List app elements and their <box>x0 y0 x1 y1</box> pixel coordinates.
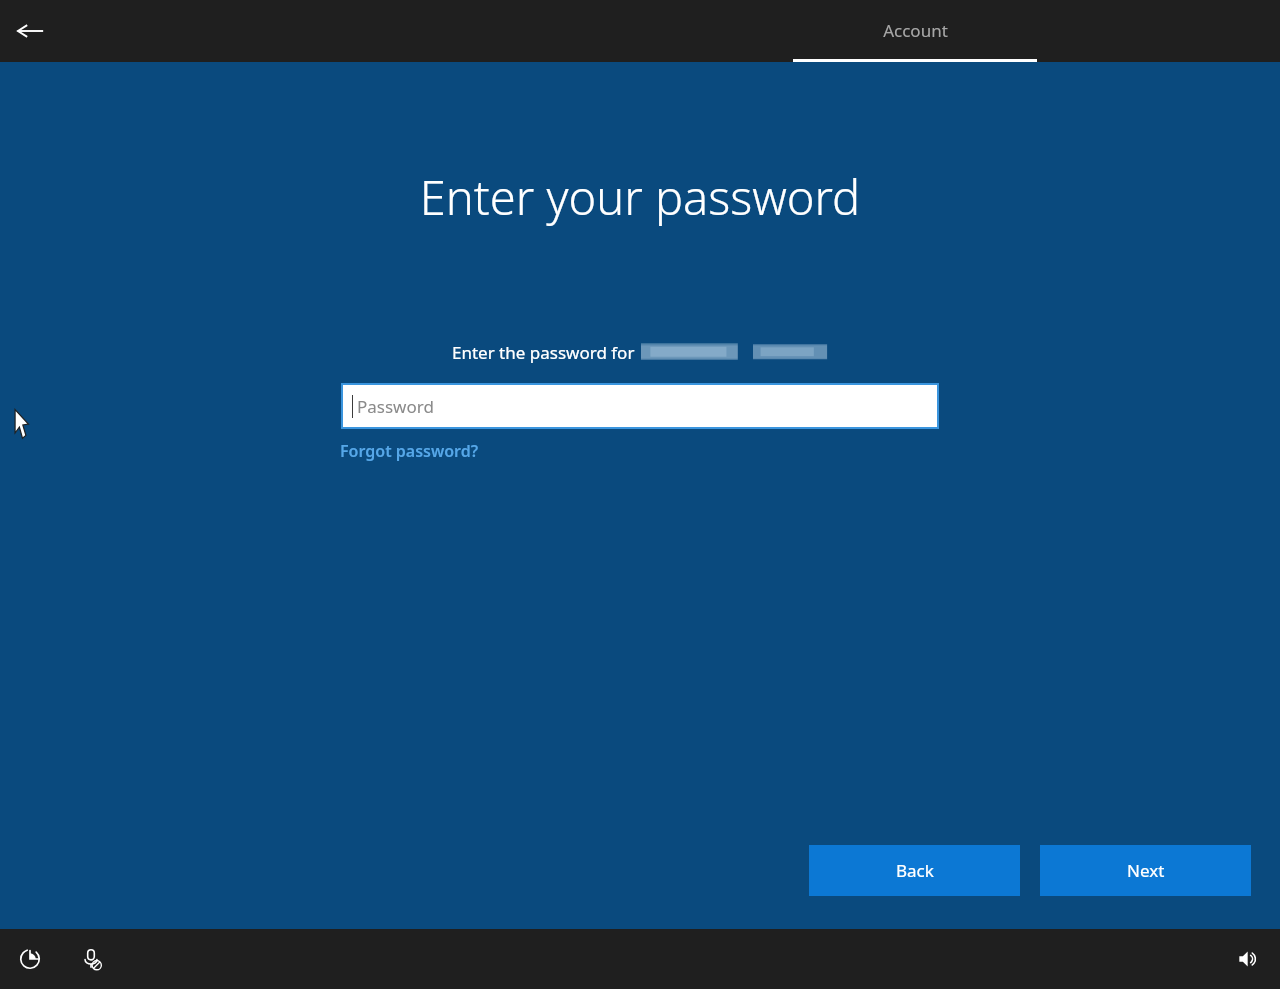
staticText: Enter the password for <box>452 341 639 364</box>
button[interactable]: Back <box>809 845 1020 896</box>
staticText: Back <box>896 859 934 882</box>
staticText: Enter your password <box>0 165 1280 229</box>
button[interactable]: Microphone off <box>70 938 112 980</box>
button[interactable]: Volume <box>1228 938 1270 980</box>
staticText: Forgot password? <box>340 440 479 462</box>
staticText: Password <box>357 395 434 418</box>
staticText: Next <box>1127 859 1165 882</box>
staticText: Account <box>883 19 948 42</box>
button[interactable]: Next <box>1040 845 1251 896</box>
button[interactable]: Back <box>8 9 52 53</box>
button[interactable]: Account <box>793 0 1037 62</box>
button[interactable]: Ease of access <box>9 938 51 980</box>
button[interactable]: Forgot password? <box>340 440 479 462</box>
button[interactable]: Password <box>343 385 937 427</box>
